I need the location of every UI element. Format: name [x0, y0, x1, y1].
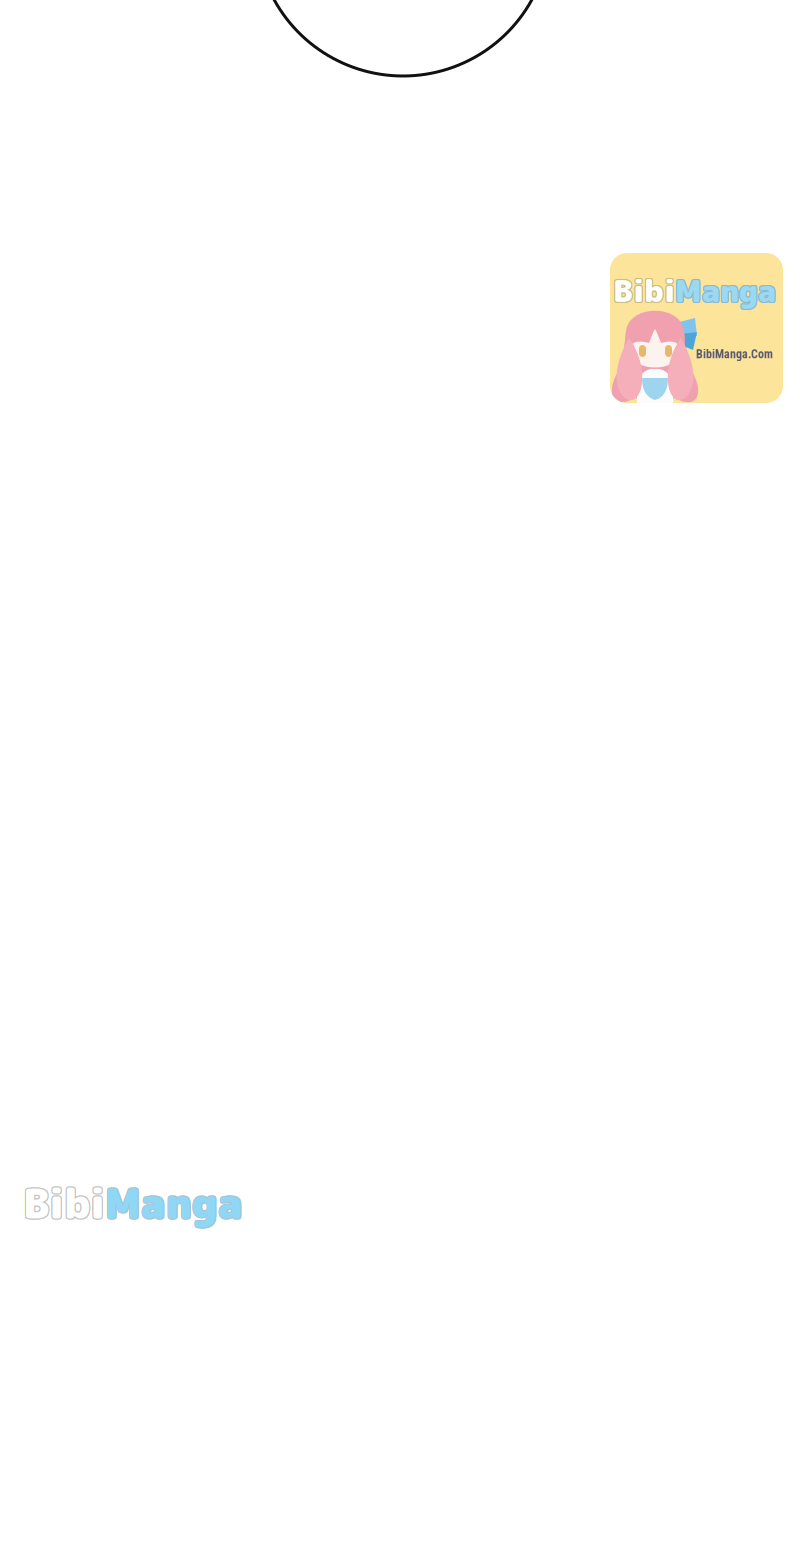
staticText: Bibi: [613, 270, 675, 313]
staticText: Bibi: [612, 270, 674, 313]
staticText: Manga: [105, 1174, 243, 1232]
staticText: Manga: [674, 270, 775, 313]
staticText: Manga: [105, 1173, 243, 1231]
staticText: Bibi: [613, 269, 675, 312]
staticText: Manga: [674, 268, 775, 311]
staticText: Bibi: [23, 1174, 105, 1232]
staticText: Bibi: [612, 268, 674, 311]
staticText: Bibi: [613, 268, 675, 311]
staticText: Bibi: [22, 1173, 104, 1231]
staticText: Manga: [105, 1175, 243, 1233]
staticText: Bibi: [22, 1174, 104, 1232]
staticText: Bibi: [22, 1175, 104, 1233]
staticText: Manga: [106, 1175, 244, 1233]
staticText: Bibi: [23, 1175, 105, 1233]
staticText: Manga: [104, 1173, 242, 1231]
staticText: Manga: [674, 269, 775, 312]
staticText: Manga: [675, 268, 776, 311]
staticText: Bibi: [614, 268, 676, 311]
staticText: Bibi: [24, 1175, 106, 1233]
staticText: Bibi: [24, 1173, 106, 1231]
staticText: Bibi: [23, 1173, 105, 1231]
staticText: Manga: [675, 270, 776, 313]
staticText: Bibi: [612, 269, 674, 312]
staticText: Manga: [104, 1175, 242, 1233]
staticText: Manga: [676, 270, 777, 313]
staticText: Manga: [106, 1173, 244, 1231]
staticText: Manga: [104, 1174, 242, 1232]
staticText: Manga: [106, 1174, 244, 1232]
staticText: Manga: [676, 268, 777, 311]
staticText: Manga: [676, 269, 777, 312]
staticText: Manga: [675, 269, 776, 312]
staticText: Bibi: [614, 269, 676, 312]
staticText: BibiManga.Com: [696, 347, 773, 361]
staticText: Bibi: [24, 1174, 106, 1232]
staticText: Bibi: [614, 270, 676, 313]
